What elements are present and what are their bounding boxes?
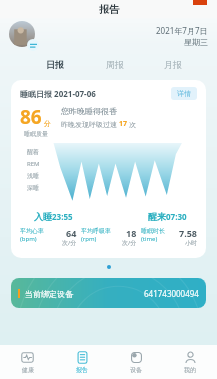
button[interactable]: 月报: [161, 57, 185, 72]
button[interactable]: 周报: [103, 57, 127, 72]
staticText: 醒来: [148, 211, 166, 222]
staticText: 报告: [76, 366, 88, 374]
staticText: 86: [20, 104, 42, 130]
staticText: 641743000494: [144, 288, 199, 299]
staticText: 周报: [106, 59, 124, 70]
staticText: 浅睡: [27, 172, 39, 180]
staticText: 我的: [184, 366, 196, 374]
staticText: 分: [44, 119, 51, 128]
staticText: 睡眠时长: [141, 227, 165, 235]
staticText: 日报: [46, 59, 64, 70]
staticText: 平均呼吸率: [81, 227, 111, 235]
staticText: 星期三: [184, 37, 208, 47]
staticText: 当前绑定设备: [25, 289, 73, 299]
staticText: 昨晚发现呼吸过速: [61, 120, 117, 129]
button[interactable]: 报告: [55, 345, 109, 379]
button[interactable]: Profile avatar: [9, 21, 35, 47]
staticText: 睡眠质量: [24, 130, 48, 138]
staticText: 23:55: [52, 211, 73, 222]
staticText: 深睡: [27, 184, 39, 192]
staticText: 平均心率: [20, 227, 44, 235]
staticText: 18: [126, 227, 137, 239]
staticText: 睡眠日报 2021-07-06: [20, 88, 96, 99]
staticText: REM: [27, 160, 40, 168]
staticText: 次/分: [62, 239, 77, 247]
button[interactable]: 我的: [163, 345, 217, 379]
staticText: 您昨晚睡得很香: [61, 106, 117, 116]
staticText: 64: [66, 227, 77, 239]
button[interactable]: Sync: [27, 39, 39, 51]
staticText: 健康: [22, 366, 34, 374]
staticText: 小时: [185, 239, 197, 247]
staticText: (bpm): [20, 235, 37, 243]
staticText: 次: [129, 120, 136, 129]
button[interactable]: 设备: [109, 345, 163, 379]
button[interactable]: 日报: [43, 57, 67, 72]
staticText: 07:30: [166, 211, 187, 222]
staticText: (rpm): [81, 235, 97, 243]
staticText: 7.58: [179, 227, 197, 239]
staticText: 2021年7月7日: [156, 25, 208, 36]
button[interactable]: 健康: [0, 345, 55, 379]
staticText: 17: [119, 119, 128, 129]
button[interactable]: 详情: [171, 87, 197, 100]
staticText: 醒着: [27, 148, 39, 156]
button[interactable]: 睡眠日报 2021-07-06: [11, 80, 206, 258]
staticText: 报告: [99, 3, 119, 16]
staticText: 月报: [164, 59, 182, 70]
button[interactable]: 当前绑定设备: [11, 278, 206, 308]
staticText: 设备: [130, 366, 142, 374]
staticText: 详情: [177, 89, 191, 98]
staticText: (time): [141, 235, 158, 243]
staticText: 入睡: [34, 211, 52, 222]
staticText: 次/分: [122, 239, 137, 247]
